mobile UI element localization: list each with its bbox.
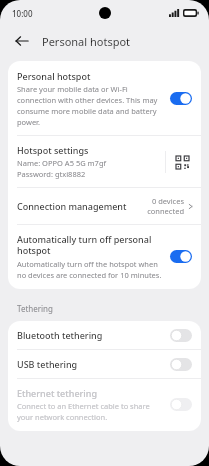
button[interactable]: Turn off [170,92,192,105]
staticText: Connect to an Ethernet cable to share yo… [17,401,164,422]
staticText: Password: gtxi8882 [17,169,86,179]
button[interactable]: Turn on [170,358,192,371]
button[interactable]: Connection management [8,188,201,224]
button[interactable]: USB tethering [8,350,201,378]
button[interactable]: Personal hotspot [8,61,201,135]
staticText: Bluetooth tethering [17,329,170,341]
button[interactable]: Show QR code [172,152,192,172]
staticText: Ethernet tethering [17,387,98,399]
staticText: 0 devices connected [144,196,184,216]
staticText: Automatically turn off personal hotspot [17,233,164,257]
staticText: Tethering [17,303,53,314]
button[interactable]: Hotspot settings [8,136,201,187]
button[interactable]: Automatically turn off personal hotspot [8,225,201,289]
staticText: Personal hotspot [42,34,131,49]
button[interactable]: Back [11,30,33,52]
button[interactable]: Ethernet tethering [8,379,201,431]
button[interactable]: Turn off [170,250,192,263]
button[interactable]: Bluetooth tethering [8,321,201,349]
button[interactable]: Turn on [170,329,192,342]
staticText: Hotspot settings [17,144,89,156]
staticText: Automatically turn off the hotspot when … [17,259,164,280]
staticText: 10:00 [12,8,33,19]
staticText: USB tethering [17,358,170,370]
button[interactable]: Turn on [170,398,192,411]
staticText: Personal hotspot [17,70,91,82]
staticText: Share your mobile data or Wi-Fi connecti… [17,84,164,127]
staticText: Connection management [17,200,140,212]
staticText: Name: OPPO A5 5G m7gf [17,158,107,168]
